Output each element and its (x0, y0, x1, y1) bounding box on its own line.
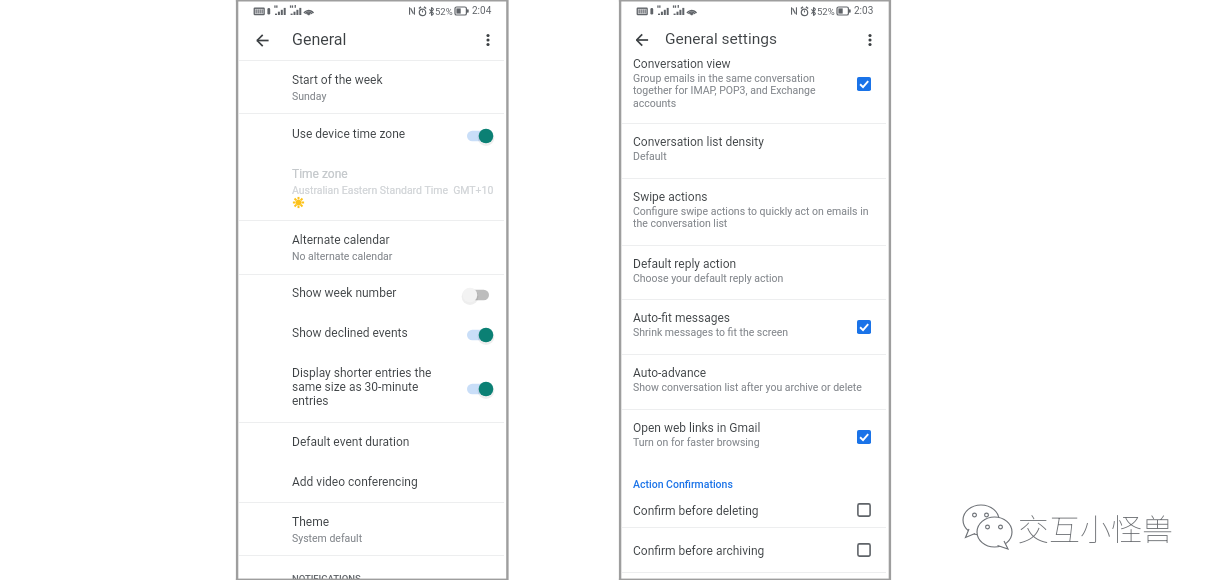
button[interactable]: Confirm before archiving (622, 528, 886, 572)
button[interactable]: Default event duration (239, 423, 504, 463)
button[interactable]: Default reply action (622, 246, 886, 300)
button[interactable]: Back (628, 26, 656, 54)
staticText: Open web links in Gmail (633, 421, 803, 435)
button[interactable]: Confirm before deleting (622, 495, 886, 527)
button[interactable]: Alternate calendar (239, 221, 504, 274)
button[interactable]: On (464, 324, 498, 346)
staticText: Show week number (292, 286, 462, 300)
staticText: Sunday (292, 90, 462, 102)
staticText: 52% (435, 6, 453, 17)
button[interactable]: Theme (239, 503, 504, 556)
button[interactable]: Unchecked (853, 499, 875, 521)
staticText: Show declined events (292, 326, 462, 340)
button[interactable]: Show declined events (239, 315, 504, 355)
button[interactable]: On (464, 125, 498, 147)
staticText: Auto-advance (633, 366, 871, 380)
button[interactable]: On (464, 378, 498, 400)
staticText: No alternate calendar (292, 250, 462, 262)
button[interactable]: Display shorter entries the same size as… (239, 355, 504, 422)
staticText: 52% (817, 6, 835, 17)
staticText: Show conversation list after you archive… (633, 381, 871, 393)
button[interactable]: Unchecked (853, 539, 875, 561)
staticText: Default reply action (633, 257, 803, 271)
staticText: Choose your default reply action (633, 272, 803, 284)
button[interactable]: Use device time zone (239, 114, 504, 158)
staticText: Group emails in the same conversation to… (633, 72, 823, 110)
button[interactable]: More options (475, 27, 501, 53)
staticText: NOTIFICATIONS (292, 573, 361, 580)
button[interactable]: Start of the week (239, 61, 504, 115)
button[interactable]: Auto-advance (622, 355, 886, 409)
staticText: 2:03 (854, 5, 874, 17)
staticText: Alternate calendar (292, 233, 462, 247)
button[interactable]: Add video conferencing (239, 463, 504, 503)
staticText: Time zone (292, 167, 502, 181)
button[interactable]: Checked (853, 73, 875, 95)
staticText: Conversation view (633, 57, 823, 71)
staticText: Confirm before archiving (633, 544, 803, 558)
staticText: Start of the week (292, 73, 462, 87)
staticText: Display shorter entries the same size as… (292, 366, 444, 408)
staticText: Theme (292, 515, 462, 529)
staticText: Auto-fit messages (633, 311, 803, 325)
button[interactable]: Checked (853, 316, 875, 338)
staticText: Action Confirmations (633, 478, 733, 490)
staticText: Configure swipe actions to quickly act o… (633, 205, 871, 230)
button[interactable]: Show week number (239, 275, 504, 315)
button[interactable]: More options (857, 27, 883, 53)
staticText: Use device time zone (292, 127, 462, 141)
staticText: Default event duration (292, 435, 462, 449)
button[interactable]: Time zone (239, 158, 504, 220)
staticText: Shrink messages to fit the screen (633, 326, 803, 338)
button[interactable]: Conversation list density (622, 124, 886, 178)
button[interactable]: Auto-fit messages (622, 300, 886, 355)
staticText: Turn on for faster browsing (633, 436, 803, 448)
staticText: System default (292, 532, 462, 544)
staticText: Australian Eastern Standard Time GMT+10 (292, 184, 502, 196)
staticText: 交互小怪兽 (1018, 505, 1173, 550)
staticText: Add video conferencing (292, 475, 462, 489)
staticText: 2:04 (472, 5, 492, 17)
button[interactable]: Conversation view (622, 55, 886, 123)
button[interactable]: Off (464, 284, 498, 306)
staticText: General settings (665, 30, 777, 48)
button[interactable]: Swipe actions (622, 179, 886, 245)
button[interactable]: Open web links in Gmail (622, 410, 886, 465)
staticText: General (292, 30, 347, 49)
staticText: Swipe actions (633, 190, 871, 204)
staticText: Conversation list density (633, 135, 803, 149)
button[interactable]: Checked (853, 426, 875, 448)
button[interactable]: Back (248, 26, 276, 54)
staticText: Default (633, 150, 803, 162)
staticText: Confirm before deleting (633, 504, 803, 518)
